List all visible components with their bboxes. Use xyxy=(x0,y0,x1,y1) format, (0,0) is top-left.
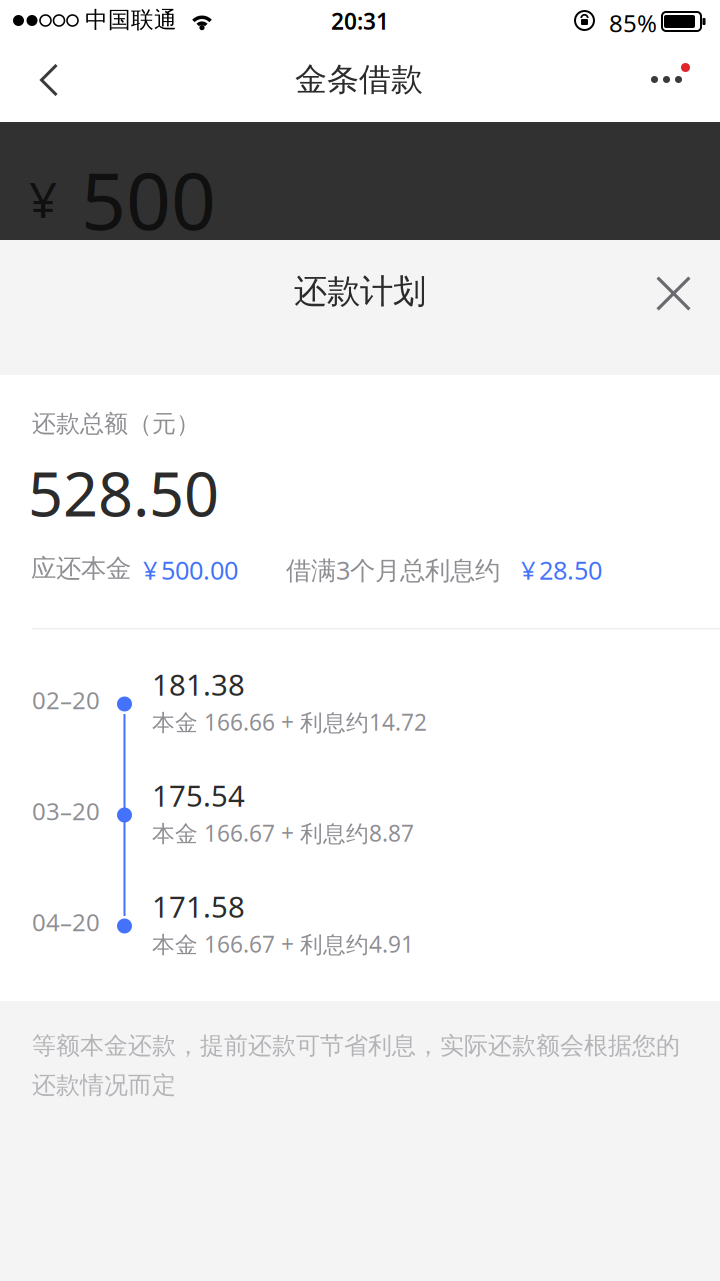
staticText: 中国联通 xyxy=(85,6,177,34)
staticText: 03–20 xyxy=(32,795,100,827)
staticText: 还款总额（元） xyxy=(32,409,200,438)
staticText: 500 xyxy=(81,147,216,251)
staticText: 金条借款 xyxy=(295,60,423,99)
staticText: 应还本金 xyxy=(31,553,131,584)
staticText: 本金 166.67 + 利息约8.87 xyxy=(152,818,414,848)
staticText: 181.38 xyxy=(152,665,245,704)
staticText: 528.50 xyxy=(28,452,219,533)
staticText: 还款计划 xyxy=(294,271,426,312)
staticText: 借满3个月总利息约 xyxy=(286,553,500,587)
staticText: 85% xyxy=(609,7,657,39)
staticText: 171.58 xyxy=(152,887,245,926)
button[interactable]: More options xyxy=(631,44,709,122)
staticText: 20:31 xyxy=(331,6,389,36)
staticText: 02–20 xyxy=(32,684,100,716)
staticText: 本金 166.67 + 利息约4.91 xyxy=(152,929,414,959)
staticText: ¥ xyxy=(29,166,57,231)
staticText: 等额本金还款，提前还款可节省利息，实际还款额会根据您的还款情况而定 xyxy=(32,1031,680,1100)
staticText: ¥ 500.00 xyxy=(143,553,238,587)
staticText: 本金 166.66 + 利息约14.72 xyxy=(152,707,427,737)
button[interactable]: Back xyxy=(11,41,87,119)
staticText: 175.54 xyxy=(152,776,245,815)
staticText: 04–20 xyxy=(32,906,100,938)
staticText: ¥ 28.50 xyxy=(521,553,602,587)
button[interactable]: Close xyxy=(642,258,705,329)
